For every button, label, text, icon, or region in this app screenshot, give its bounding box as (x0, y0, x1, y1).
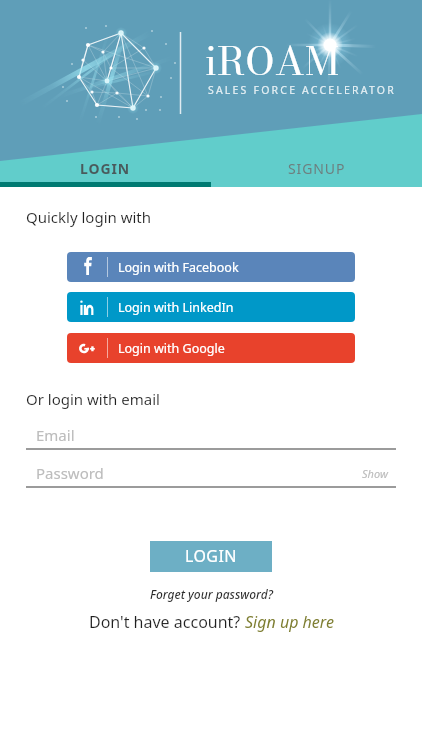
button[interactable]: Show (362, 466, 396, 481)
staticText: Login with Facebook (118, 259, 239, 276)
button[interactable]: Email (26, 424, 396, 450)
button[interactable]: Forget your password? (150, 586, 273, 602)
button[interactable]: LinkedIn (67, 292, 355, 322)
staticText: Login with Google (118, 340, 225, 357)
staticText: Quickly login with (26, 207, 152, 227)
staticText: Or login with email (26, 389, 160, 409)
staticText: Email (36, 425, 396, 445)
staticText: LOGIN (80, 159, 131, 178)
other: Google (67, 333, 107, 363)
staticText: SIGNUP (288, 159, 346, 178)
other: LinkedIn (67, 292, 107, 322)
button[interactable]: Sign up here (245, 611, 334, 633)
staticText: iROAM (205, 31, 340, 90)
staticText: Don't have account? (89, 611, 245, 633)
button[interactable]: Password (26, 462, 396, 488)
staticText: Login with LinkedIn (118, 299, 234, 316)
button[interactable]: Facebook (67, 252, 355, 282)
staticText: LOGIN (185, 545, 237, 567)
button[interactable]: LOGIN (150, 541, 272, 572)
button[interactable]: Google (67, 333, 355, 363)
other: Facebook (67, 252, 107, 282)
staticText: Password (36, 463, 362, 483)
button[interactable]: SIGNUP (211, 149, 422, 187)
button[interactable]: LOGIN (0, 149, 211, 187)
staticText: SALES FORCE ACCELERATOR (208, 83, 396, 97)
